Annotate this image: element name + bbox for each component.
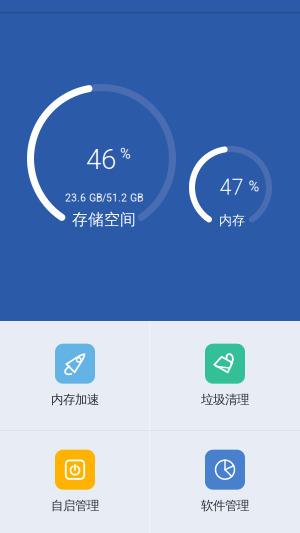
staticText: % — [120, 145, 131, 162]
staticText: 垃圾清理 — [201, 392, 249, 407]
staticText: 47 — [219, 175, 243, 200]
staticText: 自启管理 — [51, 498, 99, 513]
staticText: 软件管理 — [201, 498, 249, 513]
staticText: 23.6 GB/51.2 GB — [65, 192, 143, 204]
staticText: 存储空间 — [72, 209, 136, 229]
button[interactable]: 软件管理 — [150, 430, 300, 533]
staticText: % — [248, 178, 259, 195]
button[interactable]: 内存加速 — [0, 321, 150, 430]
staticText: 46 — [86, 143, 116, 176]
button[interactable]: 垃圾清理 — [150, 321, 300, 430]
staticText: 内存加速 — [51, 392, 99, 407]
staticText: 内存 — [219, 212, 245, 229]
button[interactable]: 自启管理 — [0, 430, 150, 533]
